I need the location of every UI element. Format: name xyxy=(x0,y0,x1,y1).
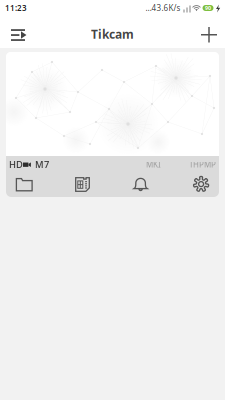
staticText: HD xyxy=(9,158,23,171)
staticText: MKI xyxy=(146,159,161,170)
staticText: Tikcam xyxy=(91,26,134,42)
staticText: 11:23 xyxy=(5,3,27,13)
button[interactable]: Alerts xyxy=(120,171,160,197)
button[interactable]: Files xyxy=(4,171,44,197)
button[interactable]: SD card xyxy=(62,171,102,197)
staticText: …43.6K/s xyxy=(145,3,180,13)
button[interactable]: Settings xyxy=(181,171,221,197)
staticText: 90 xyxy=(205,4,211,12)
button[interactable]: Add camera xyxy=(194,19,224,51)
button[interactable]: Menu xyxy=(4,19,34,51)
staticText: M7 xyxy=(35,158,49,171)
staticText: THPMP xyxy=(189,159,216,170)
